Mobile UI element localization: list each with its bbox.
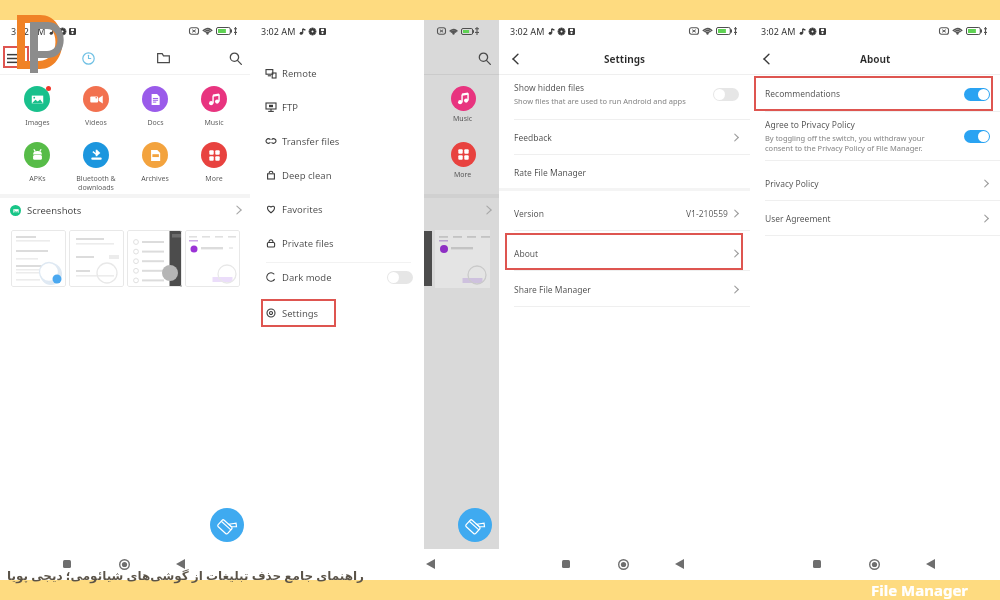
button[interactable]: Videos <box>67 86 125 128</box>
button[interactable]: Menu <box>1 45 27 71</box>
staticText: FTP <box>282 101 298 114</box>
staticText: Show hidden files <box>514 82 585 94</box>
staticText: Private files <box>282 237 334 250</box>
staticText: Settings <box>604 52 645 66</box>
staticText: Feedback <box>514 132 552 144</box>
button[interactable]: Back <box>170 554 190 574</box>
staticText: User Agreement <box>765 213 831 225</box>
button[interactable]: Private files <box>250 226 423 260</box>
button[interactable]: Version <box>499 196 750 231</box>
button[interactable]: User Agreement <box>750 201 1000 236</box>
button[interactable]: Screenshots <box>0 199 250 221</box>
staticText: More <box>454 170 472 180</box>
button[interactable]: Home <box>613 554 633 574</box>
staticText: Agree to Privacy Policy <box>765 119 855 131</box>
button[interactable]: Docs <box>126 86 184 128</box>
staticText: By toggling off the switch, you withdraw… <box>765 133 925 153</box>
button[interactable]: Remote <box>250 56 423 90</box>
staticText: 3:02 AM <box>11 25 46 37</box>
button[interactable]: More <box>185 142 243 184</box>
button[interactable]: Privacy Policy <box>750 166 1000 201</box>
staticText: Screenshots <box>27 204 82 217</box>
staticText: Archives <box>141 174 169 184</box>
button[interactable]: Switch on <box>964 88 990 101</box>
button[interactable] <box>69 230 124 287</box>
staticText: 3:02 AM <box>261 25 296 37</box>
button[interactable]: Images <box>8 86 66 128</box>
staticText: Share File Manager <box>514 284 591 296</box>
button[interactable]: Bluetooth & downloads <box>67 142 125 192</box>
button[interactable]: Settings <box>250 296 423 330</box>
staticText: Music <box>453 114 473 124</box>
button[interactable]: Switch off <box>387 271 413 284</box>
staticText: More <box>205 174 223 184</box>
staticText: Videos <box>85 118 107 128</box>
staticText: About <box>860 52 891 66</box>
button[interactable]: Recents <box>807 554 827 574</box>
staticText: Transfer files <box>282 135 340 148</box>
staticText: Bluetooth & downloads <box>76 174 116 192</box>
button[interactable]: Rate File Manager <box>499 155 750 190</box>
button[interactable]: Archives <box>126 142 184 184</box>
button[interactable]: Clean <box>210 508 244 542</box>
staticText: Version <box>514 208 544 220</box>
button[interactable]: Back <box>920 554 940 574</box>
button[interactable]: Dark mode <box>250 260 423 294</box>
button[interactable]: Switch on <box>964 130 990 143</box>
button[interactable]: FTP <box>250 90 423 124</box>
staticText: About <box>514 248 539 260</box>
button[interactable]: Share File Manager <box>499 272 750 307</box>
button[interactable]: Feedback <box>499 120 750 155</box>
button[interactable]: Recent <box>75 45 101 71</box>
staticText: Show files that are used to run Android … <box>514 96 686 106</box>
button[interactable]: Recents <box>556 554 576 574</box>
button[interactable]: Recommendations <box>750 78 1000 110</box>
button[interactable]: Favorites <box>250 192 423 226</box>
staticText: 3:02 AM <box>761 25 796 37</box>
staticText: 3:02 AM <box>510 25 545 37</box>
staticText: Images <box>25 118 50 128</box>
button[interactable]: Recents <box>57 554 77 574</box>
button[interactable]: Back <box>506 50 524 68</box>
button[interactable]: Home <box>864 554 884 574</box>
button[interactable]: Deep clean <box>250 158 423 192</box>
button[interactable]: Music <box>185 86 243 128</box>
staticText: Recommendations <box>765 88 840 100</box>
button[interactable]: Transfer files <box>250 124 423 158</box>
button[interactable]: Show hidden files <box>499 76 750 112</box>
staticText: Music <box>204 118 224 128</box>
button[interactable]: APKs <box>8 142 66 184</box>
staticText: Remote <box>282 67 317 80</box>
button[interactable]: Switch off <box>713 88 739 101</box>
button[interactable] <box>11 230 66 287</box>
button[interactable]: Back <box>757 50 775 68</box>
staticText: V1-210559 <box>686 208 728 220</box>
staticText: Docs <box>147 118 164 128</box>
button[interactable]: Back <box>669 554 689 574</box>
button[interactable] <box>185 230 240 287</box>
button[interactable]: Home <box>114 554 134 574</box>
button[interactable]: Agree to Privacy Policy <box>750 114 1000 158</box>
staticText: APKs <box>29 174 46 184</box>
staticText: File Manager <box>871 580 969 600</box>
staticText: Settings <box>282 307 319 320</box>
button[interactable]: Folders <box>150 45 176 71</box>
staticText: Deep clean <box>282 169 332 182</box>
button[interactable] <box>127 230 182 287</box>
staticText: Privacy Policy <box>765 178 819 190</box>
staticText: راهنمای جامع حذف تبلیغات از گوشی‌های شیا… <box>7 567 364 583</box>
staticText: Rate File Manager <box>514 167 586 179</box>
button[interactable]: Search <box>222 45 248 71</box>
button[interactable]: About <box>499 236 750 271</box>
staticText: Favorites <box>282 203 323 216</box>
staticText: Dark mode <box>282 271 332 284</box>
